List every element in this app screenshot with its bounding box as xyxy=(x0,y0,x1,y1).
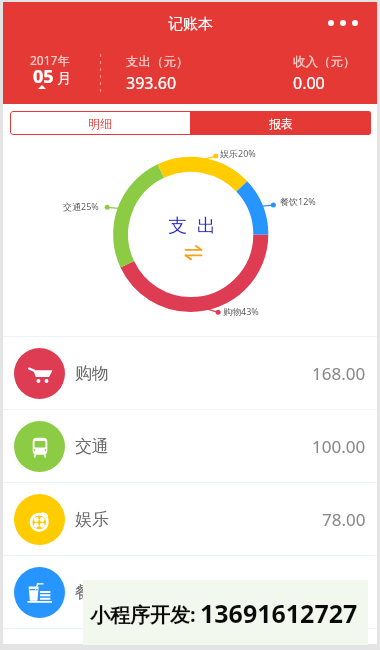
button[interactable]: 娱乐 xyxy=(3,483,377,555)
button[interactable]: More options xyxy=(328,16,377,30)
staticText: 明细 xyxy=(88,116,112,131)
button[interactable]: 明细 xyxy=(10,111,190,135)
staticText: 交通 xyxy=(75,436,109,457)
staticText: 月 xyxy=(57,70,71,88)
staticText: 购物43% xyxy=(223,305,259,317)
staticText: 交通25% xyxy=(63,200,99,212)
staticText: 娱乐20% xyxy=(220,147,256,159)
staticText: 购物 xyxy=(75,363,109,384)
button[interactable]: 购物 xyxy=(3,337,377,409)
staticText: 2017年 xyxy=(30,52,70,68)
staticText: 05 xyxy=(33,64,54,89)
button[interactable]: 2017年 xyxy=(30,52,71,101)
staticText: 报表 xyxy=(269,116,293,131)
staticText: 记账本 xyxy=(168,15,213,34)
button[interactable]: 交通 xyxy=(3,410,377,482)
staticText: 0.00 xyxy=(293,72,325,94)
staticText: 78.00 xyxy=(322,508,366,531)
staticText: 支 出 xyxy=(168,212,216,238)
staticText: 娱乐 xyxy=(75,509,109,530)
staticText: 100.00 xyxy=(312,435,366,458)
staticText: 168.00 xyxy=(312,362,366,385)
staticText: 13691612727 xyxy=(200,596,358,630)
staticText: 收入（元） xyxy=(293,54,356,70)
button[interactable]: 餐饮 xyxy=(3,556,377,628)
staticText: 餐饮12% xyxy=(280,195,316,207)
staticText: 小程序开发: xyxy=(90,601,196,628)
staticText: 餐饮 xyxy=(75,582,109,603)
button[interactable]: 报表 xyxy=(190,111,371,135)
staticText: 支出（元） xyxy=(126,54,189,70)
staticText: 393.60 xyxy=(126,72,177,94)
